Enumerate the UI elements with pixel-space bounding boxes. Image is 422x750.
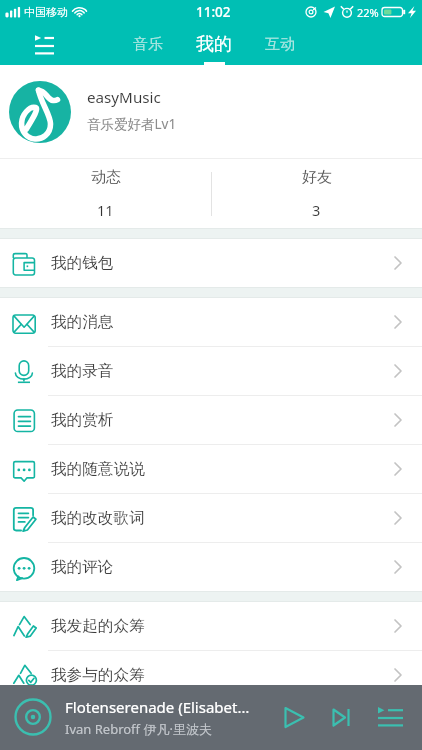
staticText: 我参与的众筹 (51, 665, 145, 685)
staticText: 我的随意说说 (51, 459, 145, 479)
staticText: 22% (357, 5, 379, 20)
staticText: 11:02 (196, 3, 231, 21)
staticText: 我的改改歌词 (51, 508, 145, 528)
button[interactable]: 我的 (185, 24, 243, 65)
staticText: 音乐爱好者Lv1 (87, 115, 177, 133)
staticText: 我的消息 (51, 312, 114, 332)
staticText: 我的钱包 (51, 253, 114, 273)
button[interactable]: 我的消息 (0, 298, 422, 346)
staticText: 我的录音 (51, 361, 114, 381)
button[interactable]: 我的随意说说 (0, 445, 422, 493)
staticText: 音乐 (133, 35, 163, 54)
staticText: 我的评论 (51, 557, 114, 577)
staticText: 好友 (302, 168, 332, 187)
button[interactable]: 我的赏析 (0, 396, 422, 444)
staticText: 互动 (265, 35, 295, 54)
button[interactable]: 互动 (254, 24, 306, 65)
staticText: Flotenserenade (Elisabet… (65, 697, 250, 717)
staticText: 动态 (91, 168, 121, 187)
button[interactable]: 我的钱包 (0, 239, 422, 287)
staticText: easyMusic (87, 87, 161, 108)
button[interactable]: 我参与的众筹 (0, 651, 422, 699)
staticText: 我发起的众筹 (51, 616, 145, 636)
staticText: 我的赏析 (51, 410, 114, 430)
staticText: 3 (312, 200, 321, 220)
staticText: 11 (97, 200, 114, 220)
button[interactable]: 好友 (211, 159, 422, 228)
button[interactable]: 动态 (0, 159, 211, 228)
staticText: Ivan Rebroff 伊凡·里波夫 (65, 720, 212, 738)
button[interactable]: 我的录音 (0, 347, 422, 395)
button[interactable]: Next track (325, 700, 359, 734)
button[interactable]: easyMusic (0, 65, 422, 159)
button[interactable]: Play (277, 700, 311, 734)
button[interactable]: 我发起的众筹 (0, 602, 422, 650)
button[interactable]: 音乐 (122, 24, 174, 65)
staticText: 我的 (196, 33, 232, 56)
staticText: 中国移动 (24, 5, 68, 19)
button[interactable]: 我的改改歌词 (0, 494, 422, 542)
button[interactable]: Playlist (373, 700, 407, 734)
button[interactable]: 我的评论 (0, 543, 422, 591)
button[interactable]: Playlist menu (29, 30, 59, 60)
button[interactable]: Flotenserenade (Elisabet… (0, 685, 422, 750)
